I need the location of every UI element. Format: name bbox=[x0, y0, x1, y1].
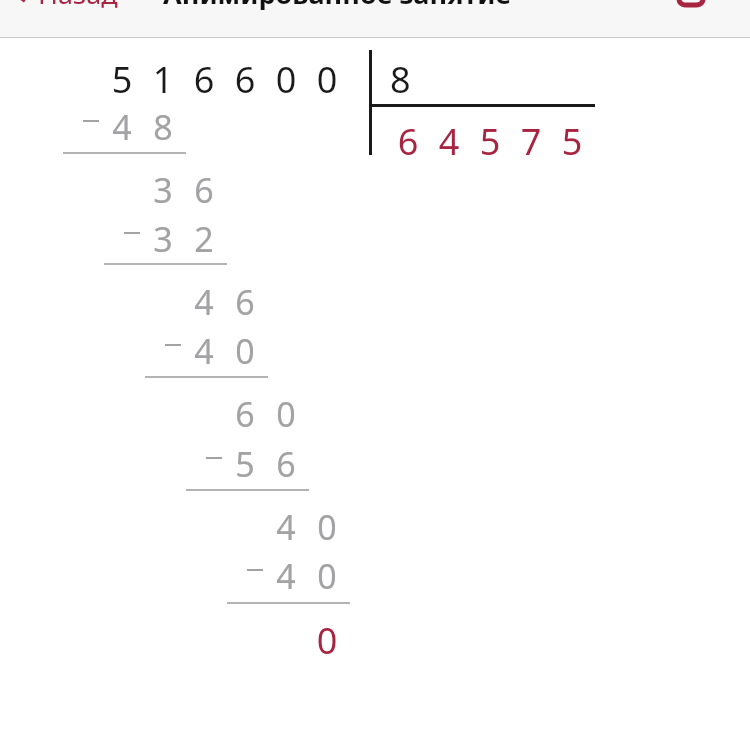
staticText: 8 bbox=[390, 55, 426, 104]
staticText: 4 bbox=[186, 279, 222, 325]
staticText: 3 bbox=[145, 167, 181, 213]
staticText: 0 bbox=[268, 391, 304, 437]
staticText: 1 bbox=[145, 55, 181, 104]
staticText: 4 bbox=[268, 553, 304, 599]
staticText: 4 bbox=[431, 117, 467, 166]
staticText: 2 bbox=[186, 216, 222, 262]
staticText: 0 bbox=[309, 553, 345, 599]
staticText: 6 bbox=[186, 55, 222, 104]
staticText: 0 bbox=[268, 55, 304, 104]
staticText: 5 bbox=[554, 117, 590, 166]
staticText: 6 bbox=[268, 441, 304, 487]
staticText: 4 bbox=[104, 104, 140, 150]
staticText: 4 bbox=[186, 328, 222, 374]
other: Back bbox=[10, 0, 32, 4]
button[interactable]: Back bbox=[0, 0, 128, 12]
staticText: Анимированное занятие bbox=[163, 0, 512, 12]
staticText: 0 bbox=[309, 504, 345, 550]
staticText: 6 bbox=[227, 391, 263, 437]
staticText: 0 bbox=[309, 616, 345, 665]
staticText: Назад bbox=[38, 0, 118, 12]
staticText: 5 bbox=[104, 55, 140, 104]
staticText: 6 bbox=[186, 167, 222, 213]
staticText: 5 bbox=[227, 441, 263, 487]
staticText: 6 bbox=[390, 117, 426, 166]
staticText: 7 bbox=[513, 117, 549, 166]
staticText: 6 bbox=[227, 279, 263, 325]
staticText: 8 bbox=[145, 104, 181, 150]
staticText: 0 bbox=[227, 328, 263, 374]
staticText: 5 bbox=[472, 117, 508, 166]
staticText: 4 bbox=[268, 504, 304, 550]
staticText: 3 bbox=[145, 216, 181, 262]
staticText: 0 bbox=[309, 55, 345, 104]
button[interactable]: Save bbox=[668, 0, 714, 12]
staticText: 6 bbox=[227, 55, 263, 104]
